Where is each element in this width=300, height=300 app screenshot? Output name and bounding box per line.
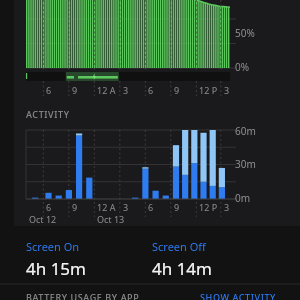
staticText: 3 bbox=[224, 201, 230, 213]
staticText: 0% bbox=[235, 60, 250, 74]
staticText: ACTIVITY bbox=[26, 108, 70, 120]
staticText: 50% bbox=[235, 26, 255, 40]
button[interactable]: SHOW ACTIVITY bbox=[200, 291, 276, 300]
staticText: Oct 12 bbox=[29, 213, 57, 225]
button[interactable]: Screen Off bbox=[152, 239, 262, 280]
staticText: 0m bbox=[235, 191, 251, 205]
staticText: SHOW ACTIVITY bbox=[200, 291, 276, 300]
staticText: 3 bbox=[123, 84, 129, 96]
staticText: 9 bbox=[72, 84, 78, 96]
staticText: 12 A bbox=[97, 84, 116, 96]
staticText: 6 bbox=[148, 201, 154, 213]
staticText: 4h 15m bbox=[26, 257, 86, 280]
staticText: 3 bbox=[123, 201, 129, 213]
staticText: 12 A bbox=[97, 201, 116, 213]
staticText: Screen On bbox=[26, 239, 80, 254]
staticText: 3 bbox=[224, 84, 230, 96]
button[interactable]: BATTERY USAGE BY APP bbox=[26, 291, 140, 300]
staticText: 60m bbox=[235, 124, 256, 138]
staticText: BATTERY USAGE BY APP bbox=[26, 291, 140, 300]
button[interactable]: Screen On bbox=[26, 239, 136, 280]
staticText: 6 bbox=[148, 84, 154, 96]
staticText: 9 bbox=[174, 201, 180, 213]
staticText: 12 P bbox=[199, 84, 218, 96]
staticText: 6 bbox=[46, 201, 52, 213]
staticText: 30m bbox=[235, 157, 256, 171]
staticText: 4h 14m bbox=[152, 257, 212, 280]
staticText: 9 bbox=[72, 201, 78, 213]
staticText: 12 P bbox=[199, 201, 218, 213]
staticText: Screen Off bbox=[152, 239, 206, 254]
staticText: 9 bbox=[174, 84, 180, 96]
staticText: Oct 13 bbox=[97, 213, 125, 225]
staticText: 6 bbox=[46, 84, 52, 96]
